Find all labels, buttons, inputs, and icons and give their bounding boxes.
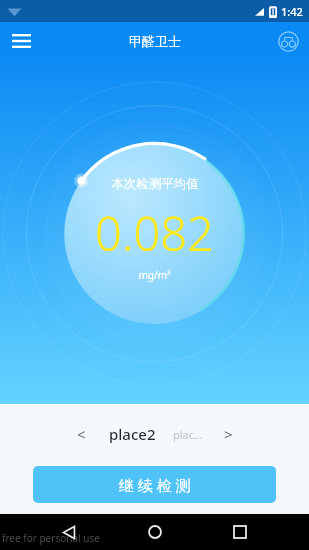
staticText: > [224, 424, 233, 444]
staticText: < [77, 424, 86, 444]
staticText: free for personal use [2, 531, 100, 545]
button[interactable]: Previous place [67, 420, 95, 448]
button[interactable]: place2 [107, 420, 158, 448]
button[interactable]: Back [53, 516, 85, 548]
staticText: 甲醛卫士 [129, 33, 181, 49]
button[interactable]: plac… [171, 423, 205, 446]
staticText: plac… [173, 427, 203, 442]
button[interactable]: Menu [0, 22, 42, 60]
staticText: mg/m³ [138, 268, 171, 282]
staticText: place2 [109, 424, 156, 444]
staticText: 本次检测平均值 [111, 176, 199, 192]
button[interactable]: Recents [224, 516, 256, 548]
staticText: 0.082 [95, 201, 214, 265]
button[interactable]: Device [267, 22, 309, 60]
button[interactable]: Next place [214, 420, 242, 448]
button[interactable]: Home [139, 516, 171, 548]
staticText: 继 续 检 测 [119, 475, 191, 495]
staticText: 1:42 [281, 4, 303, 19]
button[interactable]: 继 续 检 测 [33, 466, 276, 503]
